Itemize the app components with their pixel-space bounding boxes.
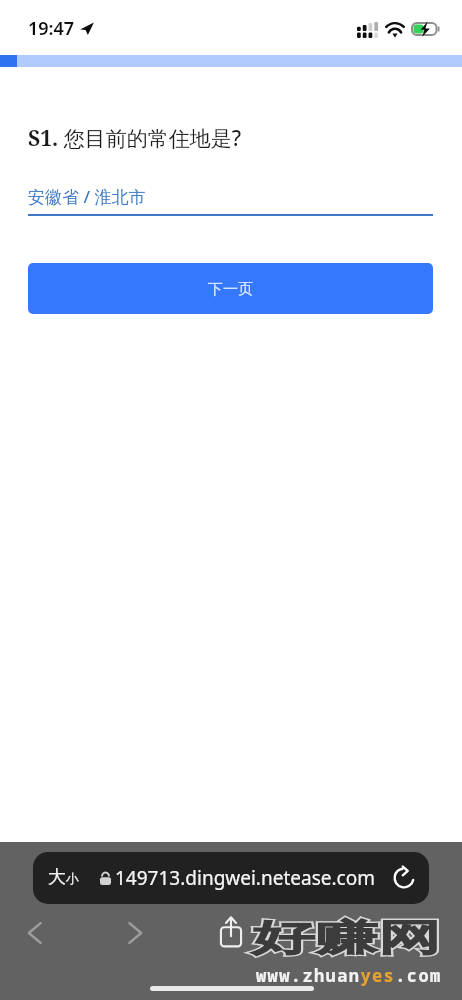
staticText: 好赚网 <box>252 915 441 960</box>
button[interactable]: Forward <box>121 917 149 949</box>
staticText: www.zhuanyes.com <box>256 964 442 987</box>
staticText: 大小 <box>48 866 79 889</box>
staticText: 好赚网 <box>252 915 441 960</box>
staticText: 安徽省 / 淮北市 <box>28 185 146 208</box>
staticText: S1. 您目前的常住地是? <box>28 124 242 153</box>
button[interactable]: Back <box>21 917 49 949</box>
button[interactable]: 下一页 <box>28 263 433 314</box>
button[interactable]: 安徽省 / 淮北市 <box>28 185 433 216</box>
button[interactable]: 大小 <box>33 852 429 904</box>
staticText: 下一页 <box>208 280 253 299</box>
staticText: 19:47 <box>28 16 75 41</box>
button[interactable]: Share <box>217 914 245 950</box>
button[interactable]: Reload page <box>390 864 418 892</box>
staticText: 149713.dingwei.netease.com <box>115 865 375 891</box>
